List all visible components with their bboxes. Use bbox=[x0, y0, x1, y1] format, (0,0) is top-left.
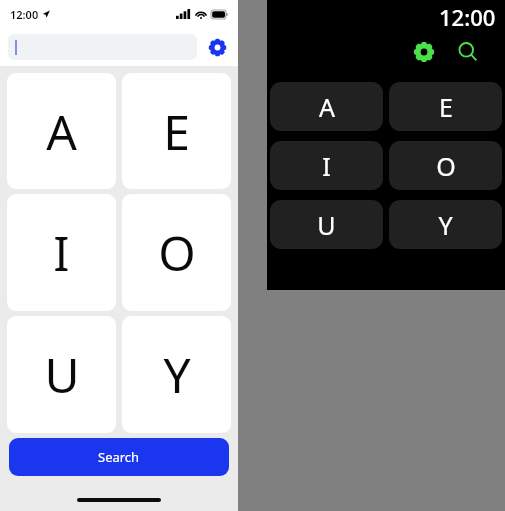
button[interactable]: Search bbox=[9, 438, 229, 476]
button[interactable]: O bbox=[122, 194, 231, 311]
staticText: Search bbox=[98, 448, 140, 466]
staticText: I bbox=[322, 149, 331, 183]
button[interactable]: I bbox=[7, 194, 116, 311]
button[interactable]: Search bbox=[453, 37, 483, 67]
staticText: U bbox=[317, 208, 336, 242]
button[interactable]: U bbox=[7, 316, 116, 433]
button[interactable]: A bbox=[7, 73, 116, 189]
staticText: I bbox=[53, 220, 70, 285]
button[interactable]: Settings bbox=[204, 34, 230, 60]
staticText: E bbox=[163, 99, 190, 164]
button[interactable]: Y bbox=[122, 316, 231, 433]
button[interactable]: E bbox=[122, 73, 231, 189]
button[interactable]: A bbox=[270, 82, 383, 131]
staticText: A bbox=[319, 90, 335, 124]
staticText: O bbox=[436, 149, 456, 183]
button[interactable]: O bbox=[389, 141, 502, 190]
button[interactable]: E bbox=[389, 82, 502, 131]
staticText: 12:00 bbox=[10, 7, 39, 22]
button[interactable] bbox=[8, 34, 197, 60]
button[interactable]: U bbox=[270, 200, 383, 249]
staticText: A bbox=[46, 99, 77, 164]
staticText: U bbox=[44, 342, 80, 407]
staticText: Y bbox=[438, 208, 453, 242]
button[interactable]: I bbox=[270, 141, 383, 190]
staticText: O bbox=[158, 220, 196, 285]
button[interactable]: Settings bbox=[409, 37, 439, 67]
staticText: E bbox=[439, 90, 453, 124]
staticText: 12:00 bbox=[439, 2, 496, 32]
staticText: Y bbox=[163, 342, 191, 407]
button[interactable]: Y bbox=[389, 200, 502, 249]
